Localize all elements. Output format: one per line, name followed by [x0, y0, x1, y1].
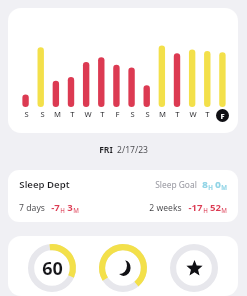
staticText: Sleep Dept: [19, 178, 70, 191]
staticText: M: [73, 206, 79, 214]
staticText: F: [220, 111, 225, 121]
staticText: H: [208, 183, 213, 191]
staticText: -7: [51, 201, 60, 214]
staticText: F: [115, 109, 120, 119]
button[interactable]: Sleep score 60: [25, 241, 79, 295]
staticText: 7 days: [19, 202, 45, 214]
button[interactable]: S: [8, 8, 238, 133]
staticText: 2/17/23: [117, 144, 148, 156]
button[interactable]: Sleep Dept: [8, 170, 238, 222]
staticText: W: [189, 109, 197, 119]
staticText: W: [84, 109, 92, 119]
staticText: T: [100, 109, 105, 119]
staticText: T: [205, 109, 210, 119]
staticText: 60: [42, 256, 63, 281]
staticText: M: [54, 109, 61, 119]
staticText: -17: [188, 201, 203, 214]
staticText: M: [221, 206, 227, 214]
staticText: 52: [210, 201, 221, 214]
staticText: S: [40, 109, 45, 119]
button[interactable]: Favorite: [167, 241, 221, 295]
staticText: 3: [67, 201, 73, 214]
staticText: 0: [215, 178, 221, 191]
staticText: M: [221, 183, 227, 191]
staticText: S: [130, 109, 135, 119]
staticText: H: [203, 206, 208, 214]
staticText: T: [70, 109, 75, 119]
staticText: Sleep Goal: [155, 179, 197, 190]
staticText: M: [159, 109, 166, 119]
staticText: FRI: [99, 144, 113, 156]
staticText: 2 weeks: [149, 202, 182, 214]
staticText: 8: [202, 178, 208, 191]
staticText: S: [24, 109, 29, 119]
staticText: T: [175, 109, 180, 119]
staticText: S: [145, 109, 150, 119]
staticText: H: [60, 206, 65, 214]
button[interactable]: Sleep mode: [96, 241, 150, 295]
